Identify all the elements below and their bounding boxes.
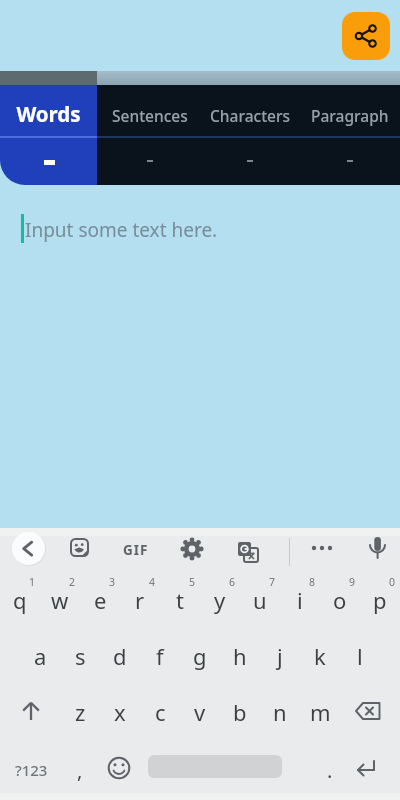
button[interactable]: .	[310, 742, 350, 798]
staticText: f	[156, 641, 164, 671]
staticText: t	[176, 585, 184, 615]
staticText: z	[75, 697, 86, 727]
button[interactable]: u	[240, 572, 280, 628]
staticText: 6	[229, 575, 236, 589]
staticText: g	[193, 641, 207, 671]
staticText: o	[333, 585, 347, 615]
staticText: 3	[109, 575, 116, 589]
button[interactable]: n	[260, 684, 300, 740]
button[interactable]: z	[60, 684, 100, 740]
staticText: ?123	[15, 760, 48, 780]
button[interactable]: Characters	[200, 85, 300, 136]
button[interactable]	[60, 532, 100, 572]
button[interactable]: ,	[60, 742, 100, 798]
button[interactable]	[346, 684, 390, 740]
button[interactable]	[172, 532, 212, 572]
staticText: i	[297, 585, 303, 615]
staticText: 7	[269, 575, 276, 589]
button[interactable]: t	[160, 572, 200, 628]
button[interactable]: f	[140, 628, 180, 684]
button[interactable]: l	[340, 628, 380, 684]
staticText: Characters	[210, 105, 291, 126]
button[interactable]: ?123	[9, 742, 53, 798]
button[interactable]	[356, 532, 396, 572]
button[interactable]: j	[260, 628, 300, 684]
staticText: r	[135, 585, 145, 615]
staticText: 2	[69, 575, 76, 589]
staticText: b	[233, 697, 247, 727]
button[interactable]: Words	[0, 85, 97, 185]
staticText: l	[357, 641, 363, 671]
button[interactable]: c	[140, 684, 180, 740]
staticText: u	[253, 585, 267, 615]
staticText: GIF	[123, 541, 149, 559]
staticText: Paragraph	[311, 105, 389, 126]
staticText: w	[51, 585, 69, 615]
button[interactable]: y	[200, 572, 240, 628]
staticText: x	[114, 697, 126, 727]
button[interactable]: d	[100, 628, 140, 684]
button[interactable]: o	[320, 572, 360, 628]
staticText: Sentences	[112, 105, 188, 126]
button[interactable]: b	[220, 684, 260, 740]
staticText: h	[233, 641, 247, 671]
staticText: Input some text here.	[25, 217, 218, 243]
button[interactable]: Sentences	[100, 85, 200, 136]
staticText: a	[34, 641, 47, 671]
staticText: q	[13, 585, 27, 615]
staticText: s	[75, 641, 86, 671]
button[interactable]: r	[120, 572, 160, 628]
button[interactable]	[342, 12, 390, 60]
button[interactable]	[8, 684, 52, 740]
button[interactable]: a	[20, 628, 60, 684]
button[interactable]: Paragraph	[300, 85, 400, 136]
button[interactable]	[12, 532, 45, 565]
button[interactable]	[99, 742, 139, 798]
staticText: v	[194, 697, 206, 727]
button[interactable]	[228, 532, 268, 572]
staticText: d	[113, 641, 127, 671]
button[interactable]: x	[100, 684, 140, 740]
button[interactable]: w	[40, 572, 80, 628]
button[interactable]: GIF	[116, 532, 156, 572]
button[interactable]: h	[220, 628, 260, 684]
staticText: 9	[349, 575, 356, 589]
button[interactable]	[302, 532, 342, 572]
staticText: 8	[309, 575, 316, 589]
staticText: .	[327, 757, 333, 784]
button[interactable]: m	[300, 684, 340, 740]
staticText: p	[373, 585, 387, 615]
staticText: j	[277, 641, 283, 671]
staticText: Words	[0, 100, 97, 128]
staticText: m	[310, 697, 331, 727]
button[interactable]	[346, 742, 390, 798]
button[interactable]: k	[300, 628, 340, 684]
staticText: 5	[189, 575, 196, 589]
staticText: 1	[29, 575, 36, 589]
staticText: n	[273, 697, 287, 727]
staticText: 4	[149, 575, 156, 589]
button[interactable]: s	[60, 628, 100, 684]
staticText: y	[214, 585, 226, 615]
staticText: ,	[77, 757, 83, 784]
button[interactable]: g	[180, 628, 220, 684]
button[interactable]: e	[80, 572, 120, 628]
staticText: e	[94, 585, 107, 615]
staticText: 0	[389, 575, 396, 589]
button[interactable]: q	[0, 572, 40, 628]
staticText: c	[155, 697, 166, 727]
button[interactable]: p	[360, 572, 400, 628]
button[interactable]: v	[180, 684, 220, 740]
button[interactable]: i	[280, 572, 320, 628]
staticText: k	[314, 641, 326, 671]
